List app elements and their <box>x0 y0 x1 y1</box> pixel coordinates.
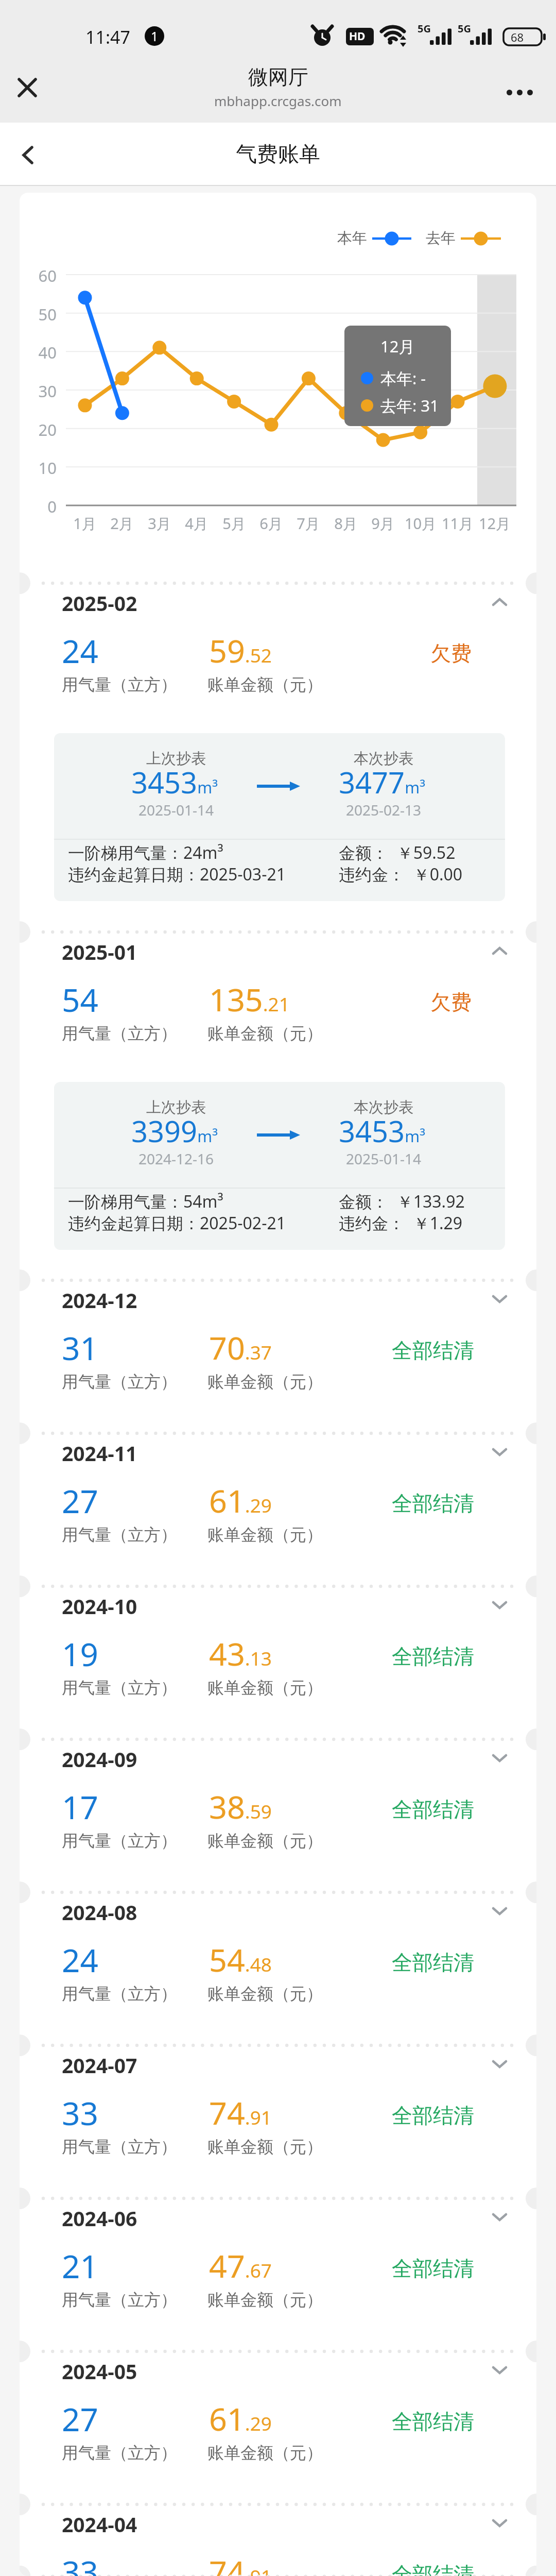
staticText: 金额： ￥59.52 <box>339 841 456 864</box>
staticText: 74.91 <box>209 2550 272 2576</box>
button[interactable]: Expand <box>477 2047 523 2081</box>
staticText: 2025-01 <box>62 938 137 965</box>
staticText: 50 <box>20 303 57 325</box>
button[interactable]: Expand <box>477 2506 523 2540</box>
staticText: 2024-05 <box>62 2358 137 2385</box>
button[interactable]: Expand <box>477 1435 523 1469</box>
button[interactable]: 2024-10 <box>20 1587 536 1739</box>
staticText: 账单金额（元） <box>207 1831 323 1851</box>
staticText: 2024-12 <box>62 1286 137 1314</box>
button[interactable]: Collapse <box>477 585 523 619</box>
button[interactable]: 2024-06 <box>20 2199 536 2351</box>
staticText: 61.29 <box>209 2397 272 2440</box>
staticText: 违约金起算日期：2025-02-21 <box>68 1212 286 1234</box>
button[interactable]: Expand <box>477 1282 523 1316</box>
staticText: 本年 <box>337 229 367 248</box>
staticText: 7月 <box>288 513 329 534</box>
staticText: 2024-07 <box>62 2052 137 2079</box>
staticText: 2月 <box>101 513 143 534</box>
staticText: 用气量（立方） <box>62 2137 177 2157</box>
staticText: 账单金额（元） <box>207 674 323 695</box>
staticText: 3月 <box>139 513 180 534</box>
button[interactable]: 2024-09 <box>20 1740 536 1892</box>
staticText: 6月 <box>251 513 292 534</box>
staticText: 21 <box>62 2244 98 2287</box>
staticText: 用气量（立方） <box>62 2290 177 2310</box>
staticText: 11:47 <box>85 25 130 49</box>
staticText: 31 <box>62 1326 98 1369</box>
button[interactable]: Expand <box>477 1588 523 1622</box>
staticText: 12月 <box>474 513 515 534</box>
staticText: 账单金额（元） <box>207 2137 323 2157</box>
staticText: 上次抄表 <box>87 1098 265 1117</box>
staticText: 全部结清 <box>392 2562 474 2576</box>
staticText: 5月 <box>214 513 255 534</box>
staticText: 用气量（立方） <box>62 674 177 695</box>
staticText: 30 <box>20 380 57 402</box>
button[interactable]: Expand <box>477 2353 523 2387</box>
button[interactable]: Expand <box>477 1741 523 1775</box>
staticText: 11月 <box>437 513 478 534</box>
staticText: 全部结清 <box>392 2103 474 2128</box>
button[interactable]: 2024-11 <box>20 1434 536 1586</box>
staticText: 去年: 31 <box>380 395 439 416</box>
staticText: 54 <box>62 978 98 1021</box>
staticText: 用气量（立方） <box>62 1984 177 2004</box>
button[interactable]: Expand <box>477 1894 523 1928</box>
staticText: 1 <box>151 27 159 45</box>
staticText: 33 <box>62 2091 98 2134</box>
staticText: 33 <box>62 2550 98 2576</box>
staticText: 9月 <box>362 513 404 534</box>
staticText: 10月 <box>400 513 441 534</box>
staticText: 用气量（立方） <box>62 2443 177 2463</box>
staticText: 8月 <box>325 513 367 534</box>
button[interactable]: More options <box>494 77 545 108</box>
staticText: 3453m³ <box>293 1111 471 1150</box>
staticText: 2025-01-14 <box>294 1149 473 1168</box>
staticText: 54.48 <box>209 1938 272 1981</box>
staticText: 5G <box>458 22 471 36</box>
staticText: 2025-02 <box>62 589 137 617</box>
button[interactable]: Expand <box>477 2200 523 2234</box>
button[interactable]: Close <box>10 71 44 105</box>
staticText: 5G <box>418 22 431 36</box>
staticText: 一阶梯用气量：24m³ <box>68 841 223 864</box>
staticText: 3399m³ <box>85 1111 264 1150</box>
staticText: mbhapp.crcgas.com <box>214 92 342 110</box>
staticText: 欠费 <box>430 640 472 666</box>
button[interactable]: 2025-01 <box>20 933 536 1280</box>
staticText: 用气量（立方） <box>62 1831 177 1851</box>
staticText: 24 <box>62 629 98 672</box>
staticText: 135.21 <box>209 978 290 1021</box>
staticText: 用气量（立方） <box>62 1023 177 1044</box>
staticText: 60 <box>20 265 57 286</box>
staticText: 2024-06 <box>62 2205 137 2232</box>
staticText: 38.59 <box>209 1785 272 1828</box>
staticText: 61.29 <box>209 1479 272 1522</box>
staticText: 47.67 <box>209 2244 272 2287</box>
staticText: 本年: - <box>380 367 426 389</box>
button[interactable]: Collapse <box>477 934 523 968</box>
button[interactable]: 2025-02 <box>20 584 536 931</box>
button[interactable]: Back <box>11 138 45 172</box>
staticText: 用气量（立方） <box>62 1371 177 1392</box>
button[interactable]: 2024-08 <box>20 1893 536 2045</box>
staticText: 10 <box>20 457 57 479</box>
staticText: 27 <box>62 1479 98 1522</box>
staticText: 70.37 <box>209 1326 272 1369</box>
staticText: 2024-11 <box>62 1439 137 1467</box>
staticText: 3477m³ <box>293 762 471 802</box>
staticText: 微网厅 <box>248 64 308 90</box>
staticText: 3453m³ <box>85 762 264 802</box>
button[interactable]: 2024-07 <box>20 2046 536 2198</box>
staticText: 一阶梯用气量：54m³ <box>68 1190 223 1213</box>
staticText: 账单金额（元） <box>207 1524 323 1545</box>
button[interactable]: 2024-12 <box>20 1281 536 1433</box>
button[interactable]: 2024-05 <box>20 2352 536 2504</box>
staticText: 20 <box>20 419 57 440</box>
staticText: 68 <box>511 29 524 45</box>
staticText: 账单金额（元） <box>207 1984 323 2004</box>
staticText: 账单金额（元） <box>207 1677 323 1698</box>
button[interactable]: 2024-04 <box>20 2505 536 2576</box>
staticText: 27 <box>62 2397 98 2441</box>
